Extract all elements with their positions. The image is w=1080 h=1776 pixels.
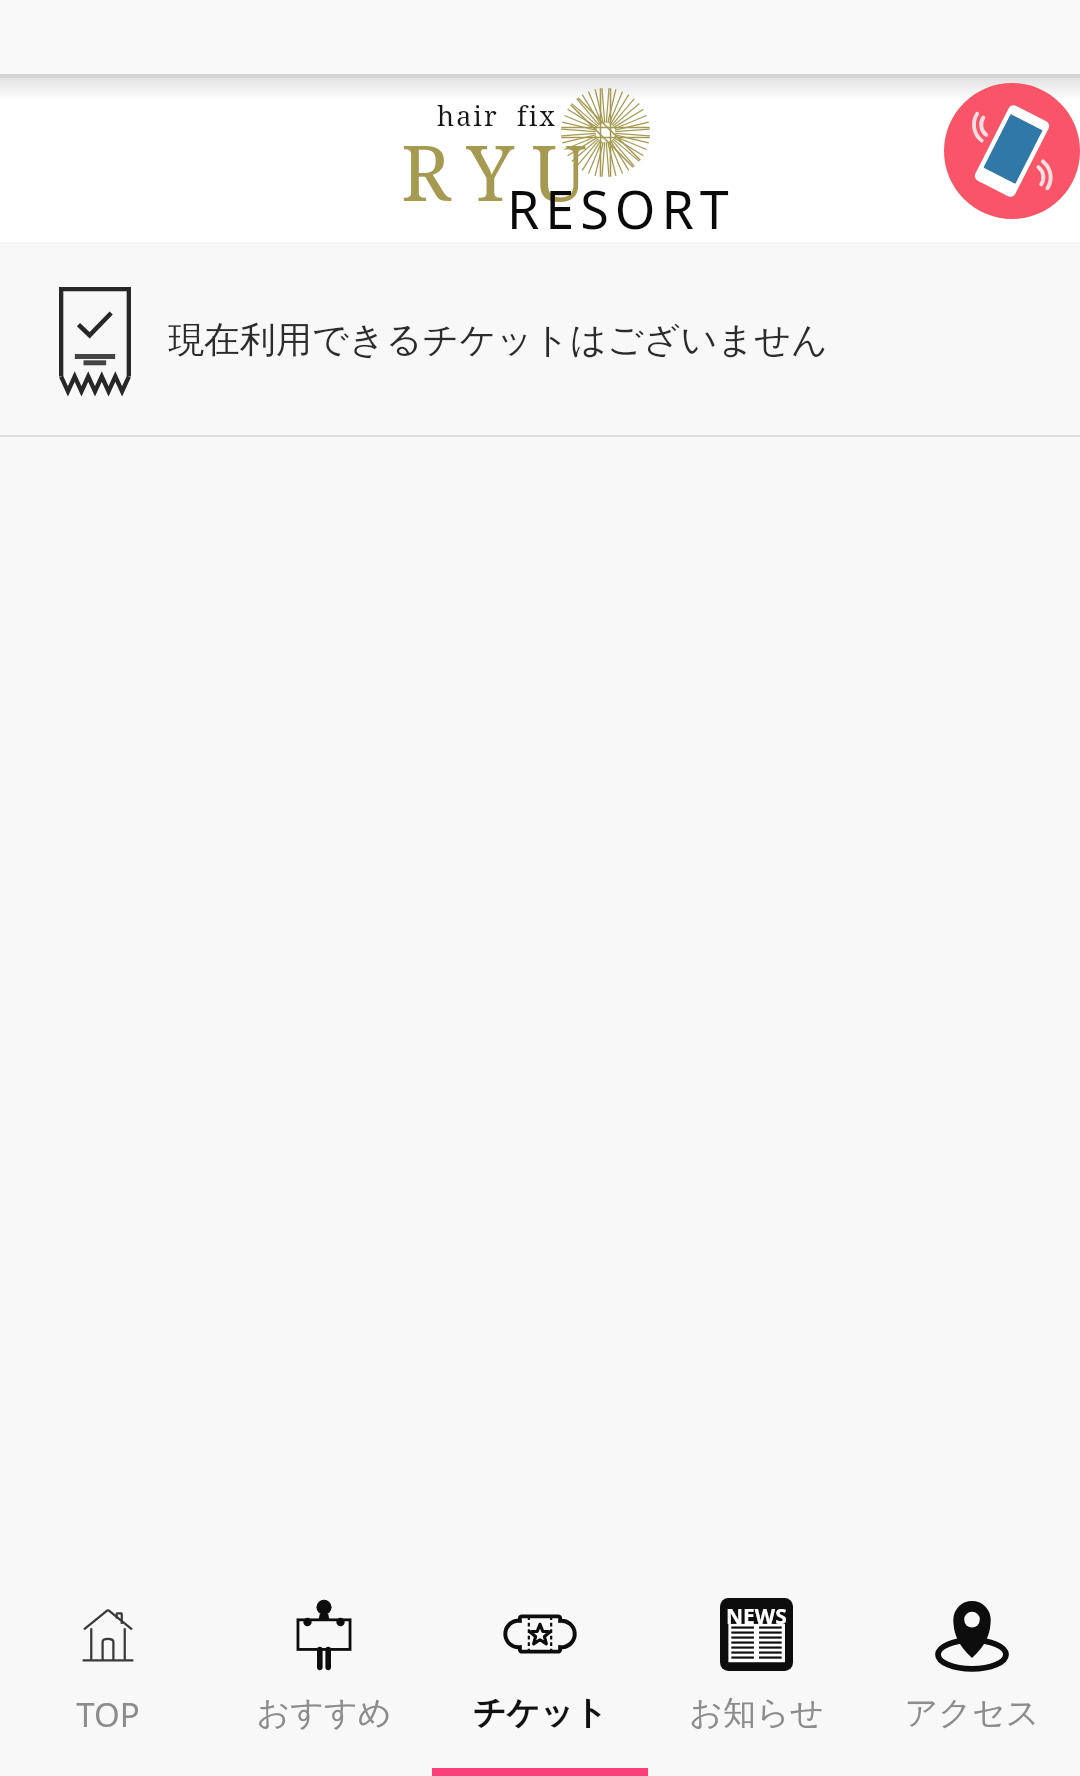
staticText: TOP (76, 1692, 140, 1737)
button[interactable]: TOP (0, 1580, 216, 1776)
staticText: チケット (472, 1692, 608, 1734)
button[interactable]: 現在利用できるチケットはございません (0, 244, 1080, 435)
button[interactable]: おすすめ (216, 1580, 432, 1776)
staticText: アクセス (904, 1692, 1040, 1734)
staticText: RESORT (507, 173, 735, 244)
staticText: おすすめ (256, 1692, 392, 1734)
staticText: RYU (401, 120, 605, 224)
staticText: NEWS (726, 1602, 787, 1631)
button[interactable]: チケット (432, 1580, 648, 1776)
staticText: 現在利用できるチケットはございません (168, 317, 828, 362)
button[interactable]: NEWS (648, 1580, 864, 1776)
button[interactable]: アクセス (864, 1580, 1080, 1776)
staticText: hair fix (437, 97, 557, 134)
staticText: お知らせ (689, 1692, 824, 1734)
button[interactable]: Call the salon (944, 83, 1080, 219)
